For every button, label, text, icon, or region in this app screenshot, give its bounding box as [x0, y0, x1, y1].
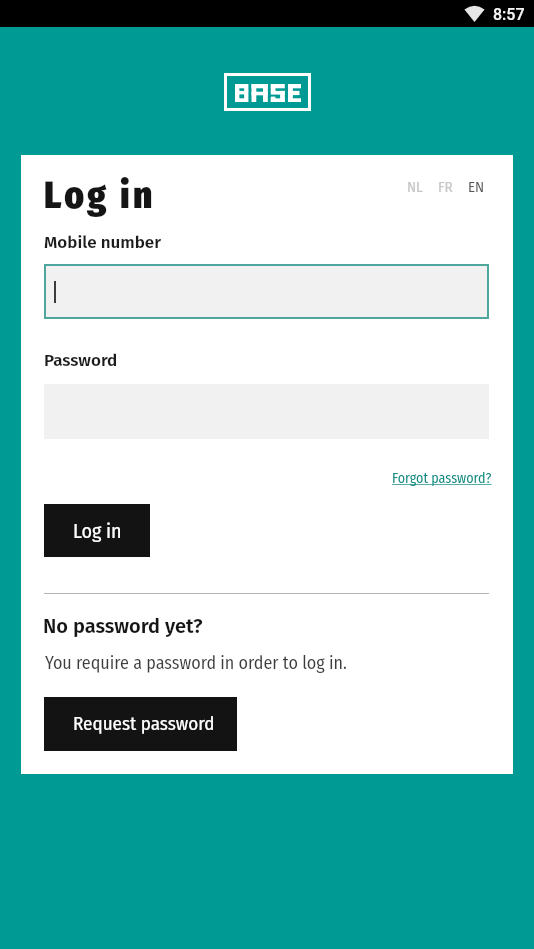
staticText: Password [44, 350, 118, 370]
staticText: Log in [73, 519, 122, 543]
staticText: 8:57 [493, 5, 525, 24]
staticText: No password yet? [43, 614, 203, 638]
staticText: Log in [44, 173, 156, 217]
button[interactable]: EN [468, 178, 485, 196]
staticText: Request password [73, 712, 215, 735]
staticText: Mobile number [44, 232, 161, 252]
button[interactable]: Request password [44, 697, 237, 751]
staticText: Forgot password? [392, 470, 492, 487]
button[interactable]: Forgot password? [392, 467, 492, 489]
button[interactable]: FR [438, 178, 453, 196]
staticText: EN [468, 178, 485, 196]
staticText: You require a password in order to log i… [45, 652, 347, 674]
other: Wi-Fi signal [464, 4, 485, 22]
other: BASE logo [224, 73, 311, 111]
button[interactable]: Mobile number input [44, 264, 489, 319]
staticText: NL [407, 178, 423, 196]
staticText: FR [438, 178, 453, 196]
button[interactable]: NL [407, 178, 423, 196]
button[interactable]: Log in [44, 504, 150, 557]
